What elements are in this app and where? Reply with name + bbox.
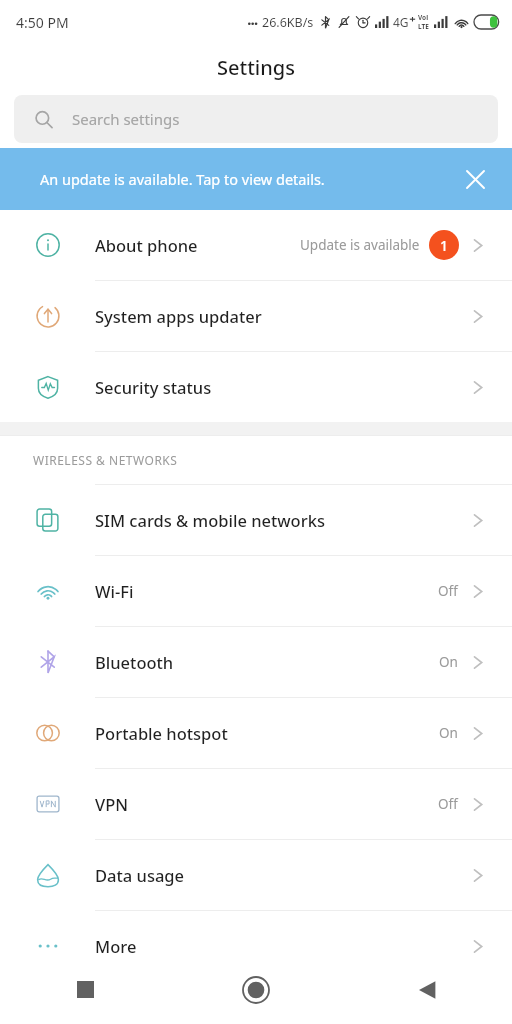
button[interactable]: Recent apps: [0, 955, 170, 1024]
button[interactable]: Back: [341, 955, 512, 1024]
staticText: Off: [438, 582, 458, 600]
button[interactable]: More: [0, 911, 512, 981]
staticText: About phone: [95, 234, 198, 256]
staticText: SIM cards & mobile networks: [95, 509, 325, 531]
button[interactable]: Dismiss update notice: [460, 164, 490, 194]
staticText: 26.6KB/s: [262, 14, 314, 31]
button[interactable]: System apps updater: [0, 281, 512, 352]
button[interactable]: Home: [170, 955, 341, 1024]
staticText: Data usage: [95, 864, 185, 886]
staticText: LTE: [418, 22, 429, 31]
button[interactable]: VPN: [0, 769, 512, 840]
staticText: Portable hotspot: [95, 722, 228, 744]
staticText: VPN: [95, 793, 129, 815]
staticText: System apps updater: [95, 305, 262, 327]
staticText: Search settings: [72, 109, 180, 129]
staticText: WIRELESS & NETWORKS: [33, 452, 178, 468]
button[interactable]: Data usage: [0, 840, 512, 911]
button[interactable]: Security status: [0, 352, 512, 422]
button[interactable]: Wi-Fi: [0, 556, 512, 627]
staticText: On: [439, 653, 458, 671]
staticText: Update is available: [300, 236, 420, 254]
button[interactable]: Portable hotspot: [0, 698, 512, 769]
button[interactable]: Search settings: [14, 95, 498, 143]
staticText: Vol: [418, 13, 429, 22]
staticText: Wi-Fi: [95, 580, 134, 602]
staticText: Off: [438, 795, 458, 813]
staticText: 4:50 PM: [16, 13, 69, 32]
staticText: Bluetooth: [95, 651, 174, 673]
staticText: On: [439, 724, 458, 742]
staticText: Security status: [95, 376, 212, 398]
button[interactable]: About phone: [0, 210, 512, 281]
button[interactable]: SIM cards & mobile networks: [0, 485, 512, 556]
button[interactable]: An update is available. Tap to view deta…: [0, 148, 512, 210]
button[interactable]: Bluetooth: [0, 627, 512, 698]
staticText: 4G: [393, 14, 409, 30]
staticText: 1: [440, 236, 449, 255]
staticText: More: [95, 935, 137, 957]
staticText: Settings: [217, 54, 295, 81]
staticText: An update is available. Tap to view deta…: [40, 169, 325, 189]
